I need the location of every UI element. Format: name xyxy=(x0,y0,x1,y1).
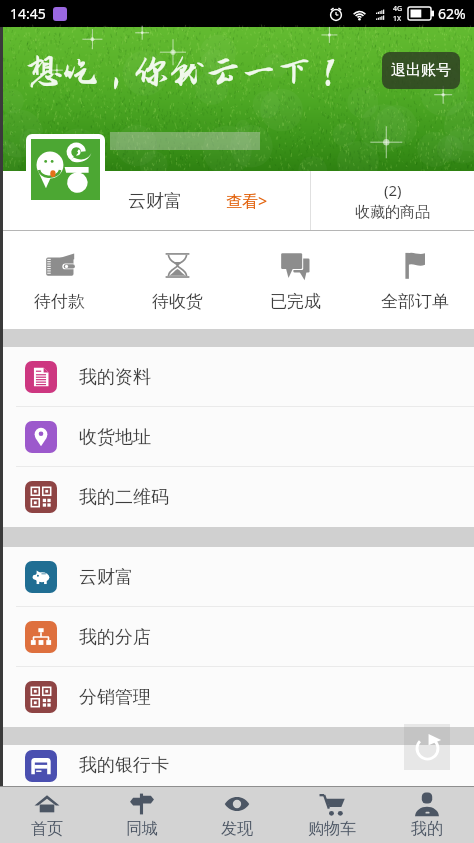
staticText: 1X xyxy=(393,14,402,24)
staticText: 同城 xyxy=(126,819,158,839)
staticText: 已完成 xyxy=(270,291,321,312)
button[interactable]: 云财富 xyxy=(0,171,310,231)
staticText: 发现 xyxy=(221,819,253,839)
staticText: 待收货 xyxy=(152,291,203,312)
staticText: 全部订单 xyxy=(381,291,449,312)
button[interactable]: 分销管理 xyxy=(0,667,474,727)
staticText: 我的二维码 xyxy=(79,486,169,509)
button[interactable]: 全部订单 xyxy=(355,231,474,329)
button[interactable]: 退出账号 xyxy=(382,52,460,89)
staticText: 查看> xyxy=(226,190,268,212)
staticText: (2) xyxy=(384,180,402,200)
staticText: 我的银行卡 xyxy=(79,754,169,777)
staticText: 待付款 xyxy=(34,291,85,312)
button[interactable]: Avatar xyxy=(31,139,100,200)
button[interactable]: 我的银行卡 xyxy=(0,745,474,786)
button[interactable]: (2) xyxy=(311,171,474,231)
staticText: 云财富 xyxy=(79,566,133,589)
staticText: 退出账号 xyxy=(391,61,451,80)
button[interactable]: 我的资料 xyxy=(0,347,474,407)
staticText: 分销管理 xyxy=(79,686,151,709)
staticText: 收藏的商品 xyxy=(355,203,430,222)
button[interactable]: 首页 xyxy=(0,786,94,843)
button[interactable]: 待付款 xyxy=(0,231,118,329)
button[interactable]: 购物车 xyxy=(284,786,379,843)
staticText: 我的分店 xyxy=(79,626,151,649)
staticText: 我的 xyxy=(411,819,443,839)
staticText: 首页 xyxy=(31,819,63,839)
staticText: 购物车 xyxy=(308,819,356,839)
staticText: 收货地址 xyxy=(79,426,151,449)
button[interactable]: 发现 xyxy=(189,786,284,843)
staticText: 14:45 xyxy=(10,4,46,23)
button[interactable]: 我的分店 xyxy=(0,607,474,667)
staticText: 云财富 xyxy=(128,190,182,213)
staticText: 想吃，你就云一下！ xyxy=(27,53,349,92)
button[interactable]: 收货地址 xyxy=(0,407,474,467)
button[interactable]: 已完成 xyxy=(236,231,355,329)
button[interactable]: 我的 xyxy=(379,786,474,843)
button[interactable]: 待收货 xyxy=(118,231,236,329)
staticText: 62% xyxy=(438,4,466,23)
staticText: 我的资料 xyxy=(79,366,151,389)
button[interactable]: 云财富 xyxy=(0,547,474,607)
button[interactable]: Refresh xyxy=(404,724,450,770)
staticText: 4G xyxy=(393,4,403,14)
button[interactable]: 我的二维码 xyxy=(0,467,474,527)
button[interactable]: 同城 xyxy=(94,786,189,843)
